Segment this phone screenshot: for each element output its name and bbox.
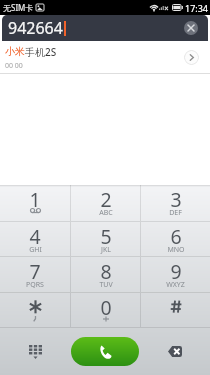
staticText: 8 <box>100 258 112 285</box>
button[interactable] <box>0 293 70 327</box>
button[interactable]: Hide keypad <box>0 328 70 375</box>
button[interactable]: 7 <box>0 257 70 292</box>
staticText: JKL <box>101 245 111 255</box>
staticText: 0 <box>100 294 112 321</box>
staticText: 7 <box>29 258 41 285</box>
staticText: 小米 <box>5 45 25 58</box>
staticText: 手机2S <box>25 45 57 59</box>
button[interactable]: Contact details <box>184 50 199 65</box>
button[interactable]: 0 <box>71 293 140 327</box>
button[interactable]: 1 <box>0 185 70 221</box>
button[interactable]: 5 <box>71 222 140 256</box>
staticText: GHI <box>29 245 42 255</box>
staticText: ABC <box>99 208 113 218</box>
staticText: 9 <box>170 258 182 285</box>
button[interactable]: Clear <box>184 21 198 35</box>
staticText: DEF <box>169 208 182 218</box>
staticText: 3 <box>170 186 182 213</box>
staticText: 17:34 <box>185 2 209 14</box>
button[interactable]: Backspace <box>140 328 210 375</box>
button[interactable]: 2 <box>71 185 140 221</box>
staticText: 1 <box>29 186 41 213</box>
staticText: WXYZ <box>166 280 185 290</box>
staticText: 无SIM卡 <box>3 2 34 13</box>
staticText: MNO <box>167 245 185 255</box>
staticText: 4 <box>29 223 41 250</box>
button[interactable]: 9 <box>141 257 210 292</box>
button[interactable]: 小米 <box>0 41 210 74</box>
staticText: PQRS <box>26 280 44 290</box>
staticText: 2 <box>100 186 112 213</box>
staticText: 6 <box>170 223 182 250</box>
staticText: 942664 <box>8 17 63 39</box>
staticText: TUV <box>99 280 113 290</box>
button[interactable] <box>141 293 210 327</box>
button[interactable]: 4 <box>0 222 70 256</box>
button[interactable]: 6 <box>141 222 210 256</box>
button[interactable]: 3 <box>141 185 210 221</box>
button[interactable]: 8 <box>71 257 140 292</box>
staticText: 00 00 <box>5 61 23 71</box>
staticText: 5 <box>100 223 112 250</box>
button[interactable]: Call <box>71 337 139 366</box>
